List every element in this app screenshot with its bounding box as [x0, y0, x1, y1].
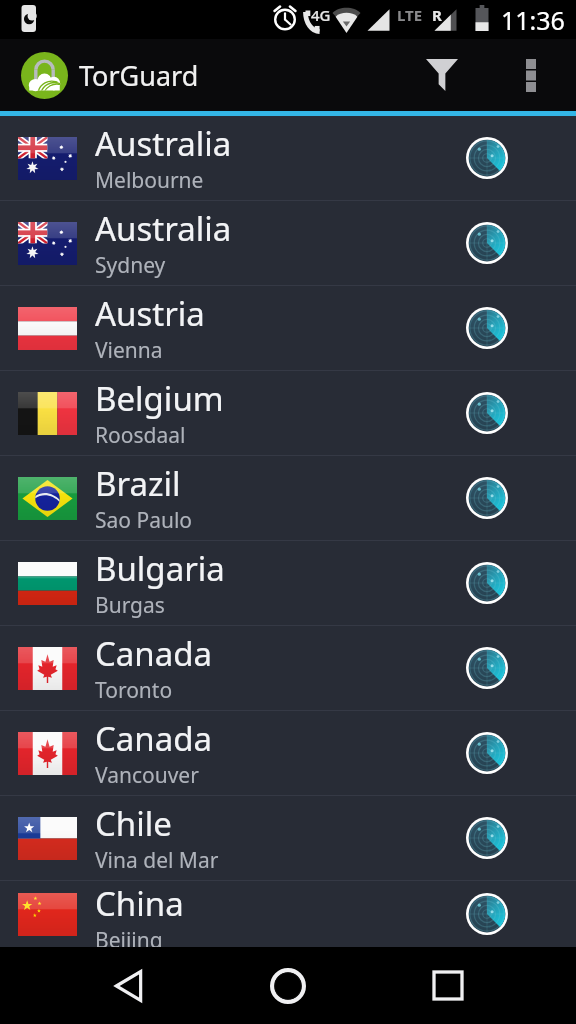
button[interactable]: Back	[88, 947, 168, 1024]
button[interactable]: Ping server	[455, 211, 519, 275]
staticText: Beijing	[95, 926, 163, 947]
button[interactable]: Australia	[0, 116, 576, 200]
button[interactable]: Canada	[0, 626, 576, 710]
staticText: 4G	[311, 5, 331, 25]
staticText: Belgium	[95, 376, 224, 421]
staticText: LTE	[397, 5, 423, 25]
staticText: China	[95, 881, 184, 926]
button[interactable]: Belgium	[0, 371, 576, 455]
button[interactable]: Home	[248, 947, 328, 1024]
staticText: 11:36	[501, 3, 565, 37]
button[interactable]: Ping server	[455, 551, 519, 615]
staticText: Canada	[95, 716, 213, 761]
staticText: Vancouver	[95, 761, 199, 790]
button[interactable]: Bulgaria	[0, 541, 576, 625]
button[interactable]: Ping server	[455, 721, 519, 785]
button[interactable]: Ping server	[455, 806, 519, 870]
staticText: Vienna	[95, 336, 163, 365]
button[interactable]: Recents	[408, 947, 488, 1024]
button[interactable]: Filter	[406, 39, 478, 111]
staticText: Australia	[95, 206, 232, 251]
button[interactable]: Ping server	[455, 296, 519, 360]
staticText: Sydney	[95, 251, 166, 280]
staticText: Australia	[95, 121, 232, 166]
button[interactable]: China	[0, 881, 576, 947]
staticText: Burgas	[95, 591, 165, 620]
staticText: Brazil	[95, 461, 181, 506]
staticText: Vina del Mar	[95, 846, 219, 875]
button[interactable]: More options	[495, 39, 567, 111]
staticText: Austria	[95, 291, 205, 336]
button[interactable]: Ping server	[455, 636, 519, 700]
staticText: Chile	[95, 801, 172, 846]
staticText: Sao Paulo	[95, 506, 193, 535]
button[interactable]: Ping server	[455, 882, 519, 946]
staticText: TorGuard	[79, 57, 199, 94]
button[interactable]: Austria	[0, 286, 576, 370]
button[interactable]: Chile	[0, 796, 576, 880]
button[interactable]: Canada	[0, 711, 576, 795]
button[interactable]: Australia	[0, 201, 576, 285]
staticText: Melbourne	[95, 166, 204, 195]
button[interactable]: Brazil	[0, 456, 576, 540]
staticText: R	[432, 5, 442, 25]
button[interactable]: Ping server	[455, 126, 519, 190]
staticText: Canada	[95, 631, 213, 676]
staticText: Roosdaal	[95, 421, 186, 450]
staticText: Bulgaria	[95, 546, 225, 591]
button[interactable]: Ping server	[455, 381, 519, 445]
button[interactable]: Ping server	[455, 466, 519, 530]
staticText: Toronto	[95, 676, 173, 705]
